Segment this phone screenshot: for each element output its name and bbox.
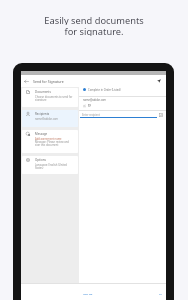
button[interactable]: Send: [157, 79, 161, 83]
staticText: Enter recipient: [82, 113, 100, 117]
button[interactable]: ADD ME: [82, 290, 94, 297]
staticText: CC: [159, 292, 162, 295]
staticText: Message: [35, 132, 48, 136]
staticText: Add agreement name: [35, 137, 62, 140]
button[interactable]: Complete in Order (Listed): [83, 87, 166, 92]
staticText: sign this document: [35, 143, 59, 146]
staticText: Send for Signature: [33, 79, 64, 84]
staticText: name@adobe.com: [83, 98, 106, 102]
staticText: Choose documents to send for: [35, 95, 73, 98]
staticText: Options: [35, 158, 46, 162]
staticText: ADD ME: [83, 292, 93, 295]
staticText: Documents: [35, 90, 51, 94]
staticText: for signature.: [64, 25, 124, 36]
staticText: signature: [35, 98, 47, 101]
staticText: States): [35, 166, 44, 169]
button[interactable]: Options: [22, 156, 78, 174]
staticText: name@adobe.com: [35, 117, 58, 120]
button[interactable]: Back: [24, 79, 29, 84]
button[interactable]: Contacts: [159, 113, 163, 117]
staticText: Easily send documents: [44, 14, 144, 25]
staticText: Recipients: [35, 112, 50, 116]
staticText: Language: English (United: [35, 163, 67, 166]
button[interactable]: Message: [22, 130, 78, 153]
button[interactable]: Recipients: [22, 110, 78, 127]
staticText: Complete in Order (Listed): [88, 88, 121, 92]
button[interactable]: Documents: [22, 88, 78, 107]
staticText: Message: Please review and: [35, 140, 69, 143]
button[interactable]: CC: [158, 290, 163, 297]
